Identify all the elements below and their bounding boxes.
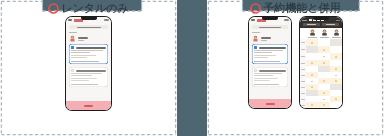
button[interactable]: レンタルのみ <box>48 1 129 15</box>
button[interactable] <box>306 102 318 108</box>
button[interactable] <box>330 72 342 78</box>
button[interactable] <box>330 78 342 84</box>
button[interactable] <box>306 39 318 46</box>
button[interactable] <box>330 96 342 102</box>
button[interactable] <box>252 44 288 64</box>
button[interactable] <box>330 53 342 60</box>
button[interactable] <box>318 102 330 108</box>
button[interactable]: 次へ進む <box>66 101 111 110</box>
button[interactable] <box>330 66 342 72</box>
button[interactable] <box>318 53 330 60</box>
button[interactable] <box>306 84 318 90</box>
button[interactable] <box>318 60 330 66</box>
button[interactable] <box>252 67 288 87</box>
button[interactable] <box>322 23 339 26</box>
button[interactable] <box>318 78 330 84</box>
button[interactable]: 次へ進む <box>249 99 291 108</box>
button[interactable] <box>330 102 342 108</box>
button[interactable] <box>306 72 318 78</box>
button[interactable] <box>303 23 320 26</box>
button[interactable]: 予約機能と併用 <box>250 1 341 15</box>
button[interactable] <box>318 90 330 96</box>
button[interactable] <box>318 96 330 102</box>
staticText: レンタルのみ <box>61 1 129 15</box>
staticText: 予約機能と併用 <box>263 1 341 15</box>
button[interactable] <box>306 78 318 84</box>
button[interactable] <box>330 29 342 38</box>
button[interactable] <box>318 46 330 53</box>
button[interactable] <box>306 60 318 66</box>
button[interactable] <box>69 44 108 64</box>
button[interactable] <box>318 29 330 38</box>
button[interactable] <box>306 29 318 38</box>
button[interactable] <box>69 67 108 87</box>
